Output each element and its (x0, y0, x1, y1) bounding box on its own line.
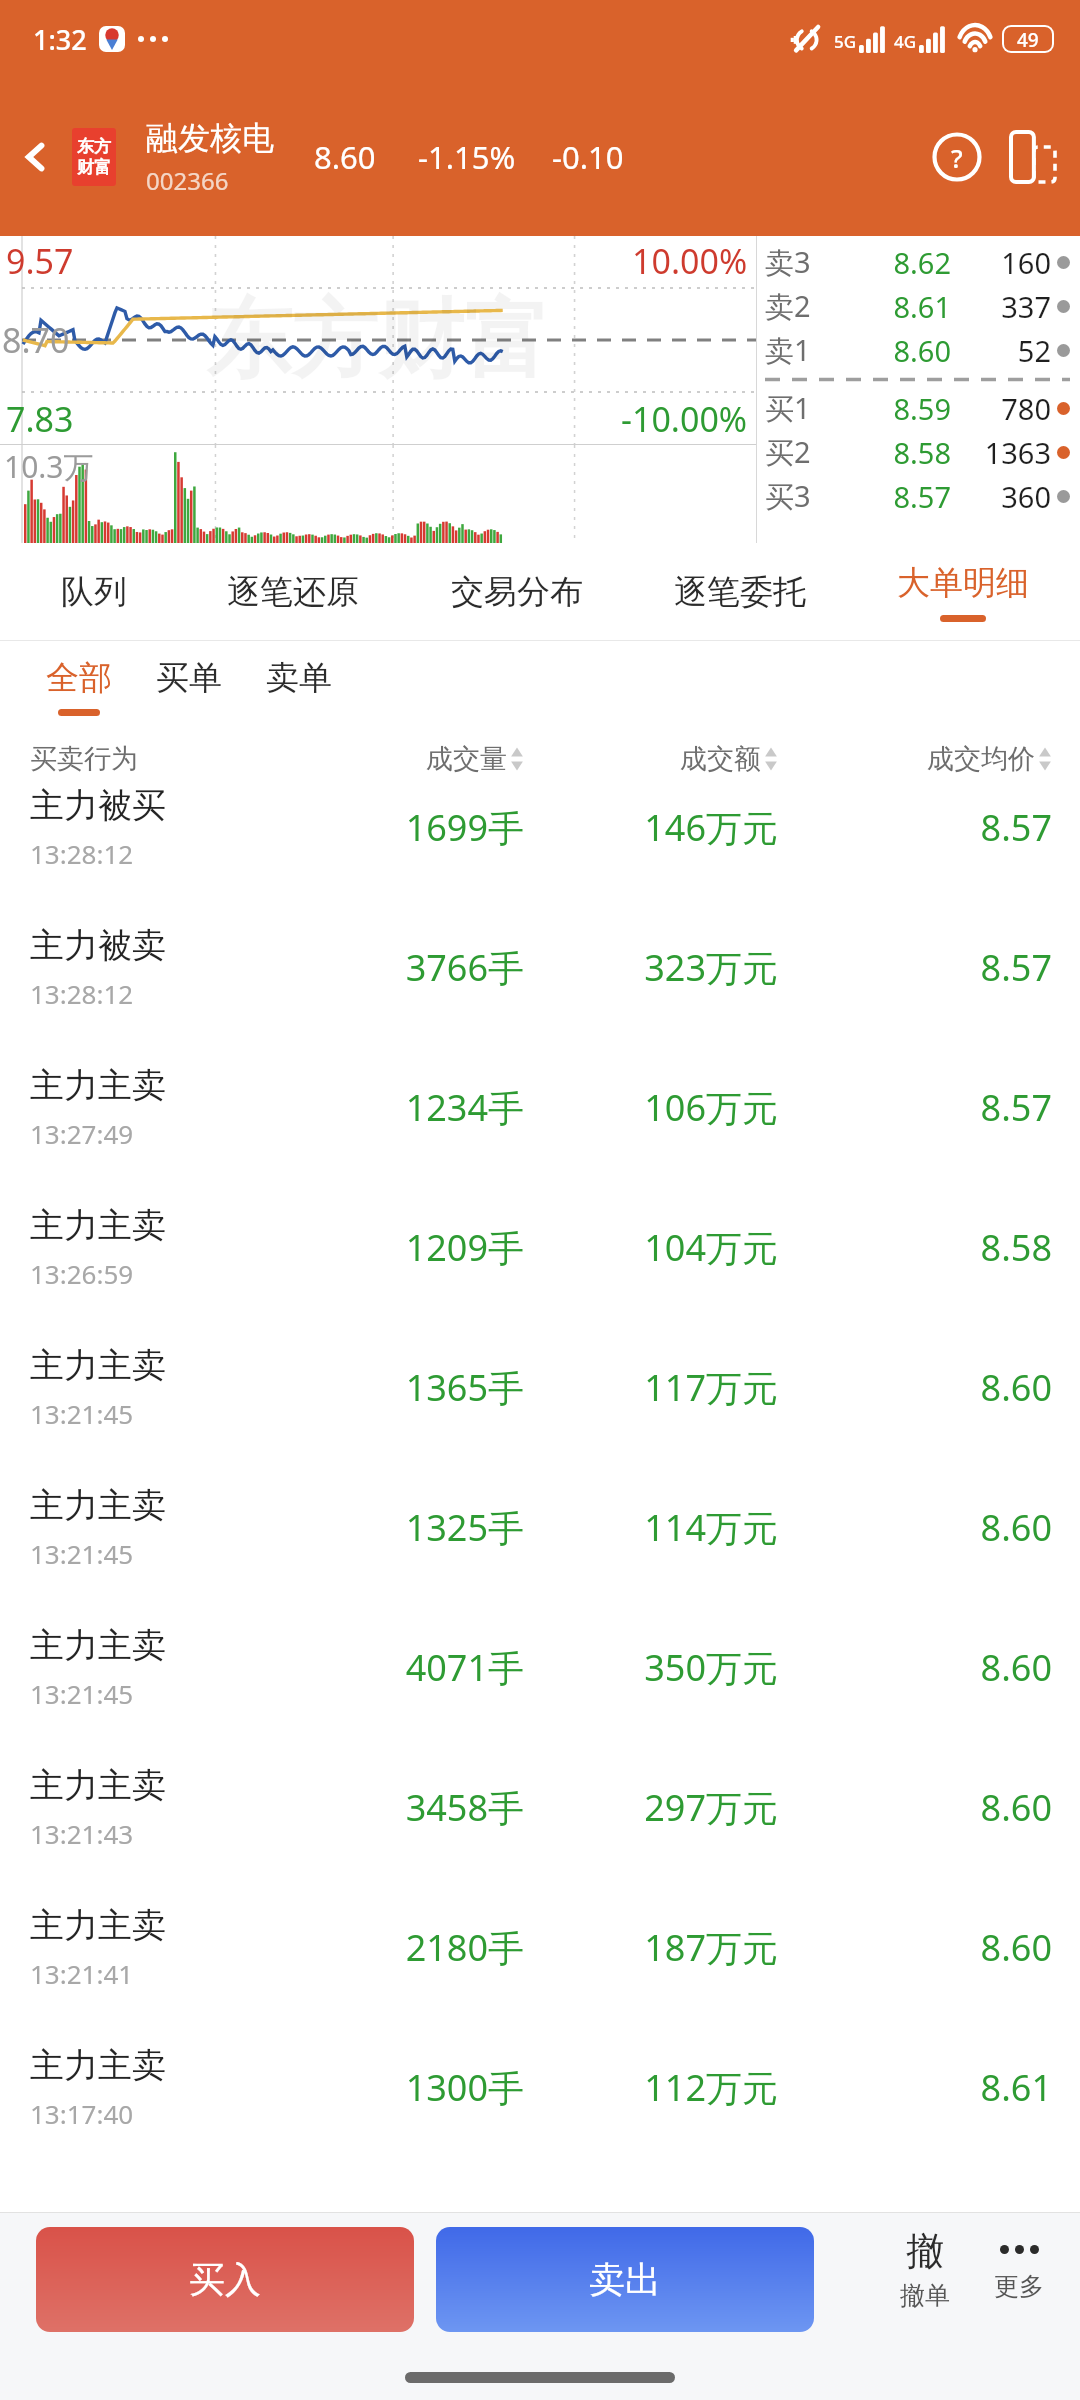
staticText: 卖2 (765, 286, 835, 326)
button[interactable]: 买3 (765, 474, 1070, 518)
staticText: 13:28:12 (30, 836, 134, 871)
button[interactable]: 成交量 (270, 742, 524, 776)
staticText: 8.58 (778, 1223, 1052, 1272)
staticText: 360 (959, 477, 1051, 516)
staticText: 8.57 (835, 477, 951, 516)
button[interactable]: 逐笔委托 (628, 543, 851, 641)
staticText: 106万元 (524, 1083, 778, 1132)
staticText: 8.57 (778, 803, 1052, 852)
button[interactable]: 卖单 (250, 651, 348, 722)
staticText: 9.57 (6, 238, 74, 284)
button[interactable]: 主力被买 (0, 757, 1080, 897)
staticText: 卖出 (589, 2257, 661, 2302)
staticText: 8.58 (835, 433, 951, 472)
button[interactable]: 主力主卖 (0, 2017, 1080, 2157)
staticText: 350万元 (524, 1643, 778, 1692)
staticText: 323万元 (524, 943, 778, 992)
staticText: 逐笔还原 (227, 571, 359, 613)
staticText: -1.15% (418, 136, 516, 178)
staticText: 大单明细 (897, 562, 1029, 604)
button[interactable]: 更多 (986, 2227, 1052, 2302)
staticText: 8.62 (835, 243, 951, 282)
staticText: 8.57 (778, 943, 1052, 992)
staticText: 1363 (959, 433, 1051, 472)
staticText: 1300手 (270, 2063, 524, 2112)
button[interactable]: 成交均价 (778, 742, 1052, 776)
staticText: 卖单 (266, 657, 332, 699)
staticText: 4071手 (270, 1643, 524, 1692)
staticText: 主力主卖 (30, 2044, 166, 2087)
staticText: 3458手 (270, 1783, 524, 1832)
button[interactable]: Fullscreen (1000, 124, 1066, 190)
staticText: 主力主卖 (30, 1764, 166, 1807)
staticText: 主力被卖 (30, 924, 166, 967)
staticText: 117万元 (524, 1363, 778, 1412)
staticText: 东方 (77, 136, 111, 157)
button[interactable]: 买1 (765, 386, 1070, 430)
staticText: 5G (834, 30, 857, 53)
staticText: 1365手 (270, 1363, 524, 1412)
staticText: 交易分布 (451, 571, 583, 613)
button[interactable]: 逐笔还原 (181, 543, 405, 641)
staticText: 撤 (906, 2227, 944, 2275)
staticText: 112万元 (524, 2063, 778, 2112)
button[interactable]: 交易分布 (405, 543, 628, 641)
staticText: 1325手 (270, 1503, 524, 1552)
button[interactable]: 主力主卖 (0, 1737, 1080, 1877)
staticText: 8.60 (778, 1923, 1052, 1972)
staticText: 8.57 (778, 1083, 1052, 1132)
button[interactable]: 卖3 (765, 240, 1070, 284)
staticText: 780 (959, 389, 1051, 428)
staticText: 8.59 (835, 389, 951, 428)
button[interactable]: 买入 (36, 2227, 414, 2332)
button[interactable]: 主力主卖 (0, 1037, 1080, 1177)
button[interactable]: 大单明细 (851, 543, 1074, 641)
staticText: 8.70 (2, 317, 70, 363)
button[interactable]: 卖出 (436, 2227, 814, 2332)
staticText: 49 (1017, 27, 1039, 51)
button[interactable]: 东方 (72, 128, 116, 186)
button[interactable]: 主力主卖 (0, 1317, 1080, 1457)
staticText: 10.00% (632, 238, 748, 284)
button[interactable]: 主力被卖 (0, 897, 1080, 1037)
staticText: 主力主卖 (30, 1484, 166, 1527)
staticText: 卖3 (765, 242, 835, 282)
button[interactable]: 主力主卖 (0, 1597, 1080, 1737)
staticText: 2180手 (270, 1923, 524, 1972)
staticText: 3766手 (270, 943, 524, 992)
button[interactable]: Back (0, 78, 72, 236)
staticText: 主力被买 (30, 784, 166, 827)
button[interactable]: 主力主卖 (0, 1177, 1080, 1317)
button[interactable]: 队列 (6, 543, 181, 641)
staticText: -0.10 (552, 136, 624, 178)
button[interactable]: 主力主卖 (0, 1457, 1080, 1597)
staticText: 13:21:45 (30, 1396, 134, 1431)
button[interactable]: 成交额 (524, 742, 778, 776)
button[interactable]: 全部 (30, 651, 128, 722)
staticText: 13:17:40 (30, 2096, 134, 2131)
button[interactable]: 卖2 (765, 284, 1070, 328)
staticText: 8.60 (314, 136, 376, 178)
staticText: ? (951, 140, 963, 175)
staticText: 13:28:12 (30, 976, 134, 1011)
staticText: 13:21:45 (30, 1536, 134, 1571)
staticText: 主力主卖 (30, 1204, 166, 1247)
button[interactable]: 卖1 (765, 328, 1070, 372)
staticText: 买3 (765, 476, 835, 516)
staticText: 8.60 (835, 331, 951, 370)
staticText: 东方财富 (206, 286, 550, 394)
staticText: 104万元 (524, 1223, 778, 1272)
staticText: 4G (894, 30, 917, 53)
button[interactable]: Help (926, 126, 988, 188)
staticText: -10.00% (621, 396, 748, 442)
staticText: 1699手 (270, 803, 524, 852)
staticText: 买单 (156, 657, 222, 699)
staticText: 主力主卖 (30, 1904, 166, 1947)
staticText: 队列 (61, 571, 127, 613)
button[interactable]: 撤 (890, 2227, 960, 2311)
button[interactable]: 买单 (140, 651, 238, 722)
button[interactable]: 买2 (765, 430, 1070, 474)
button[interactable]: 主力主卖 (0, 1877, 1080, 2017)
staticText: 财富 (77, 157, 111, 178)
staticText: 297万元 (524, 1783, 778, 1832)
